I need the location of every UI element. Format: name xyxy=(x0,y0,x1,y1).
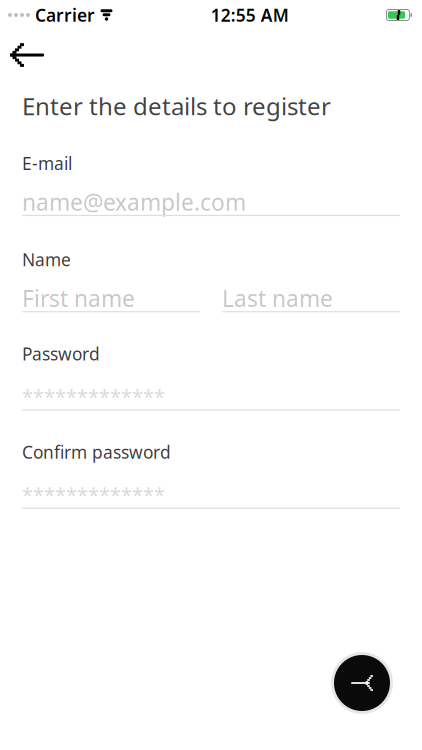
staticText: E-mail xyxy=(22,152,72,175)
staticText: Name xyxy=(22,248,71,271)
staticText: Last name xyxy=(222,283,333,313)
staticText: name@example.com xyxy=(22,187,246,217)
staticText: Confirm password xyxy=(22,440,171,463)
button[interactable]: Continue xyxy=(331,652,393,714)
staticText: Carrier xyxy=(35,3,95,26)
staticText: ************* xyxy=(22,383,165,410)
staticText: First name xyxy=(22,283,135,313)
staticText: Enter the details to register xyxy=(22,90,331,122)
staticText: Password xyxy=(22,342,100,365)
staticText: ************* xyxy=(22,481,165,508)
button[interactable]: Back xyxy=(0,34,58,76)
staticText: 12:55 AM xyxy=(211,3,289,26)
